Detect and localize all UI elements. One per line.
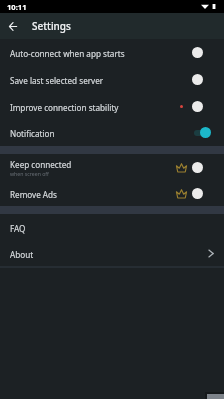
button[interactable]: Toggle bbox=[192, 47, 211, 58]
button[interactable]: Toggle bbox=[192, 101, 211, 112]
button[interactable]: Save last selected server bbox=[0, 66, 224, 93]
button[interactable]: Back bbox=[0, 13, 26, 39]
staticText: Remove Ads bbox=[10, 189, 57, 200]
button[interactable]: Remove Ads bbox=[0, 180, 224, 206]
staticText: FAQ bbox=[10, 223, 26, 234]
staticText: when screen off bbox=[10, 170, 49, 177]
button[interactable]: Toggle bbox=[192, 162, 211, 173]
staticText: Notification bbox=[10, 128, 55, 139]
button[interactable]: Improve connection stability bbox=[0, 93, 224, 120]
staticText: 10:11 bbox=[7, 2, 27, 12]
button[interactable]: Auto-connect when app starts bbox=[0, 39, 224, 66]
button[interactable]: Keep connected bbox=[0, 154, 224, 180]
button[interactable]: Toggle bbox=[192, 74, 211, 85]
button[interactable]: FAQ bbox=[0, 214, 224, 240]
button[interactable]: About bbox=[0, 240, 224, 266]
button[interactable]: Notification bbox=[0, 119, 224, 146]
button[interactable]: Toggle bbox=[192, 188, 211, 199]
staticText: Improve connection stability bbox=[10, 102, 119, 113]
staticText: Auto-connect when app starts bbox=[10, 48, 125, 59]
staticText: About bbox=[10, 249, 34, 260]
staticText: Save last selected server bbox=[10, 75, 104, 86]
button[interactable]: Toggle bbox=[192, 127, 211, 138]
staticText: Keep connected bbox=[10, 159, 72, 170]
staticText: Settings bbox=[32, 19, 71, 33]
